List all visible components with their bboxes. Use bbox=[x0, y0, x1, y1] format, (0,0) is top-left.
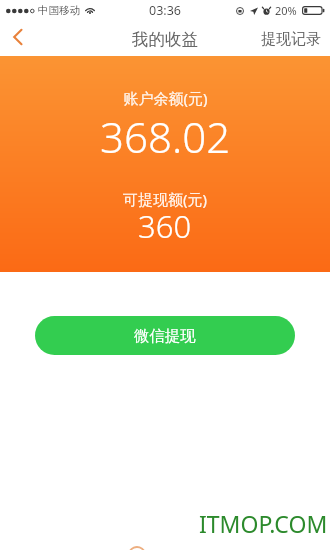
staticText: 提现记录 bbox=[261, 30, 321, 49]
staticText: 368.02 bbox=[100, 108, 231, 165]
button[interactable]: Back bbox=[0, 21, 34, 55]
button[interactable]: 提现记录 bbox=[252, 23, 330, 54]
staticText: 中国移动 bbox=[38, 4, 80, 17]
button[interactable]: 微信提现 bbox=[35, 316, 295, 355]
staticText: ITMOP.COM bbox=[199, 508, 328, 539]
staticText: 20% bbox=[275, 3, 297, 18]
staticText: 微信提现 bbox=[134, 326, 196, 345]
staticText: 360 bbox=[138, 205, 192, 247]
staticText: 我的收益 bbox=[132, 29, 198, 50]
staticText: 账户余额(元) bbox=[123, 88, 208, 108]
staticText: 可提现额(元) bbox=[123, 189, 208, 209]
staticText: 03:36 bbox=[149, 2, 181, 19]
